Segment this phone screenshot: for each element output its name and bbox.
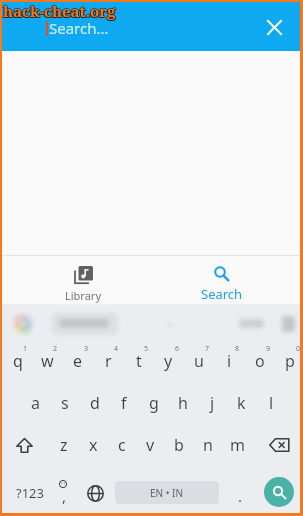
button[interactable]: z	[50, 425, 78, 465]
button[interactable]: h	[168, 383, 197, 423]
staticText: f	[121, 392, 127, 414]
button[interactable]: v	[136, 425, 164, 465]
staticText: Library	[65, 288, 102, 303]
staticText: 6	[175, 344, 180, 354]
staticText: 5	[144, 344, 149, 354]
staticText: hack-cheat.org	[2, 1, 115, 21]
staticText: 4	[114, 344, 119, 354]
button[interactable]: w	[33, 341, 62, 381]
staticText: l	[269, 392, 274, 414]
staticText: m	[230, 434, 245, 456]
staticText: x	[89, 434, 98, 456]
staticText: w	[41, 350, 54, 372]
staticText: 8	[235, 344, 240, 354]
staticText: hack-cheat.org	[2, 2, 115, 22]
button[interactable]: d	[80, 383, 109, 423]
staticText: Search	[201, 285, 243, 303]
staticText: r	[105, 350, 112, 372]
button[interactable]: o	[245, 341, 274, 381]
button[interactable]: b	[165, 425, 193, 465]
staticText: ?123	[16, 484, 44, 502]
staticText: hack-cheat.org	[3, 0, 116, 20]
staticText: o	[255, 350, 265, 372]
button[interactable]: c	[108, 425, 136, 465]
staticText: i	[227, 350, 232, 372]
staticText: a	[31, 392, 40, 414]
staticText: s	[61, 392, 69, 414]
button[interactable]: r	[94, 341, 123, 381]
button[interactable]: t	[124, 341, 153, 381]
button[interactable]	[52, 474, 76, 514]
staticText: 0	[296, 344, 301, 354]
button[interactable]: Library	[41, 256, 125, 304]
button[interactable]: l	[257, 383, 286, 423]
button[interactable]: u	[184, 341, 213, 381]
button[interactable]	[78, 473, 112, 513]
staticText: j	[210, 392, 215, 414]
button[interactable]: n	[194, 425, 222, 465]
button[interactable]: m	[223, 425, 251, 465]
staticText: t	[136, 350, 142, 372]
staticText: hack-cheat.org	[4, 2, 117, 22]
staticText: Search…	[49, 18, 109, 38]
staticText: p	[285, 350, 295, 372]
button[interactable]: i	[215, 341, 244, 381]
staticText: e	[73, 350, 83, 372]
staticText: 1	[23, 344, 28, 354]
button[interactable]: ?123	[5, 473, 55, 513]
staticText: hack-cheat.org	[3, 2, 116, 22]
button[interactable]: EN • IN	[115, 481, 219, 504]
button[interactable]	[258, 11, 290, 43]
staticText: .	[238, 486, 243, 506]
staticText: c	[118, 434, 126, 456]
button[interactable]: a	[21, 383, 50, 423]
button[interactable]: f	[109, 383, 138, 423]
staticText: d	[90, 392, 100, 414]
button[interactable]: g	[139, 383, 168, 423]
button[interactable]	[2, 425, 46, 465]
button[interactable]: j	[198, 383, 227, 423]
button[interactable]: p	[275, 341, 303, 381]
staticText: b	[174, 434, 184, 456]
staticText: 2	[53, 344, 58, 354]
staticText: q	[13, 350, 23, 372]
button[interactable]	[255, 425, 303, 465]
staticText: hack-cheat.org	[4, 1, 117, 21]
staticText: g	[149, 392, 159, 414]
staticText: h	[178, 392, 188, 414]
staticText: 7	[205, 344, 210, 354]
button[interactable]: e	[63, 341, 92, 381]
staticText: 3	[84, 344, 89, 354]
staticText: EN • IN	[150, 486, 184, 500]
staticText: hack-cheat.org	[3, 1, 116, 21]
button[interactable]: q	[3, 341, 32, 381]
staticText: z	[60, 434, 68, 456]
button[interactable]: Search	[180, 256, 264, 304]
staticText: 9	[266, 344, 271, 354]
staticText: v	[146, 434, 155, 456]
staticText: u	[194, 350, 204, 372]
button[interactable]: x	[79, 425, 107, 465]
button[interactable]	[264, 477, 294, 507]
staticText: k	[237, 392, 246, 414]
button[interactable]: y	[154, 341, 183, 381]
button[interactable]: k	[227, 383, 256, 423]
button[interactable]: s	[50, 383, 79, 423]
staticText: n	[203, 434, 213, 456]
staticText: y	[164, 350, 173, 372]
staticText: ,	[62, 486, 67, 506]
